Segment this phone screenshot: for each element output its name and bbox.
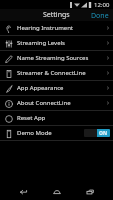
staticText: App Appearance <box>17 84 106 92</box>
staticText: Streaming Levels <box>17 39 106 47</box>
button[interactable]: Streamer & ConnectLine <box>0 66 113 80</box>
staticText: Done <box>91 11 109 19</box>
button[interactable]: Demo Mode <box>0 126 113 140</box>
button[interactable]: Home <box>47 185 67 199</box>
button[interactable]: Back <box>13 185 33 199</box>
staticText: Demo Mode <box>17 129 84 137</box>
button[interactable]: Hearing Instrument Programmes <box>0 21 113 35</box>
button[interactable]: Done <box>87 9 113 21</box>
staticText: Name Streaming Sources <box>17 54 106 62</box>
button[interactable]: Streaming Levels <box>0 36 113 50</box>
staticText: ON <box>99 130 108 137</box>
button[interactable]: Demo Mode toggle, on <box>84 129 110 137</box>
staticText: Streamer & ConnectLine <box>17 69 106 77</box>
button[interactable]: About ConnectLine <box>0 96 113 110</box>
staticText: 12:00 <box>94 1 110 9</box>
button[interactable]: Name Streaming Sources <box>0 51 113 65</box>
button[interactable]: App Appearance <box>0 81 113 95</box>
staticText: About ConnectLine <box>17 99 106 107</box>
staticText: Reset App <box>17 114 110 122</box>
staticText: Settings <box>43 10 70 20</box>
staticText: Hearing Instrument Programmes <box>17 24 106 32</box>
button[interactable]: Reset App <box>0 111 113 125</box>
button[interactable]: Recent apps <box>80 185 100 199</box>
